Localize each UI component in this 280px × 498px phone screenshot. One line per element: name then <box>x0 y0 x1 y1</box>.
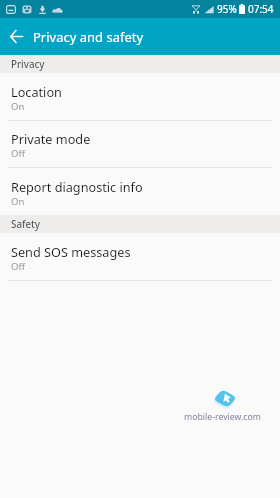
button[interactable]: Back <box>0 18 33 55</box>
staticText: Privacy and safety <box>33 28 144 46</box>
staticText: 07:54 <box>248 2 274 16</box>
button[interactable]: Send SOS messages <box>0 233 280 280</box>
staticText: Off <box>11 147 25 160</box>
button[interactable]: Report diagnostic info <box>0 168 280 215</box>
staticText: Send SOS messages <box>11 243 131 260</box>
staticText: On <box>11 195 25 208</box>
staticText: Private mode <box>11 130 91 147</box>
button[interactable]: Location <box>0 73 280 120</box>
staticText: Off <box>11 260 25 273</box>
staticText: Location <box>11 83 62 100</box>
staticText: 95% <box>217 2 237 16</box>
staticText: Safety <box>11 218 41 231</box>
staticText: mobile-review.com <box>184 411 261 423</box>
staticText: On <box>11 100 25 113</box>
staticText: Report diagnostic info <box>11 178 143 195</box>
staticText: Privacy <box>11 58 45 71</box>
button[interactable]: Private mode <box>0 121 280 167</box>
